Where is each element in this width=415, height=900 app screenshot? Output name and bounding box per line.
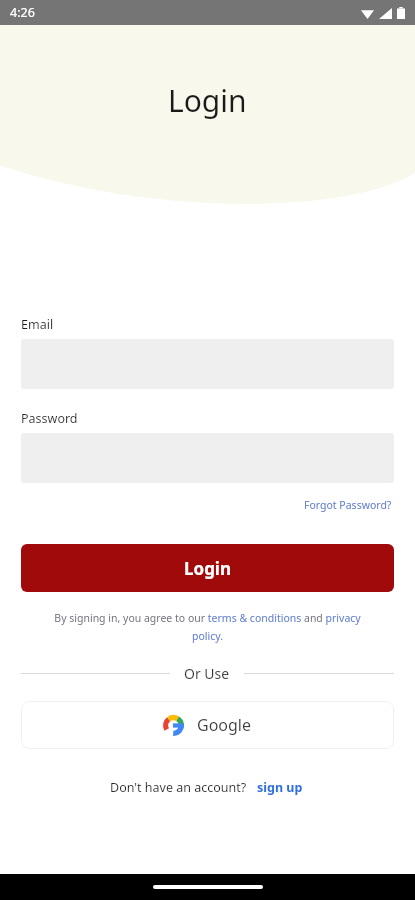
staticText: 4:26 <box>10 4 35 21</box>
button[interactable]: Login <box>21 544 394 592</box>
staticText: By signing in, you agree to our terms & … <box>53 611 362 643</box>
staticText: Google <box>197 714 252 736</box>
button[interactable]: Forgot Password? <box>302 496 394 514</box>
staticText: Email <box>21 316 54 333</box>
staticText: sign up <box>257 779 303 796</box>
button[interactable]: sign up <box>255 777 305 798</box>
staticText: Or Use <box>184 664 230 683</box>
staticText: Forgot Password? <box>304 498 392 512</box>
staticText: Password <box>21 410 78 427</box>
staticText: Login <box>184 557 232 580</box>
other: Google <box>163 715 184 736</box>
button[interactable]: Google <box>21 701 394 749</box>
staticText: Login <box>168 80 247 121</box>
staticText: Don't have an account? <box>110 779 247 796</box>
